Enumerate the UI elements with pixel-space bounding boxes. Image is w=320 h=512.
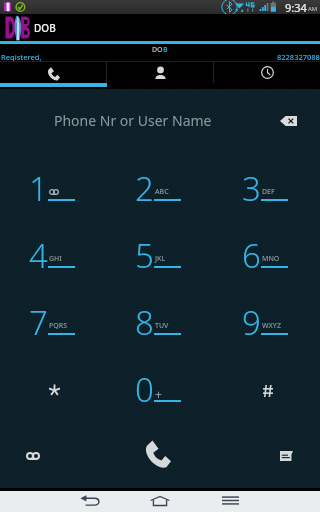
button[interactable]: Home — [140, 491, 180, 512]
button[interactable]: Recents — [210, 491, 250, 512]
button[interactable]: Backspace — [280, 116, 297, 126]
button[interactable] — [213, 357, 320, 424]
button[interactable]: 6 — [213, 223, 320, 290]
button[interactable]: 9 — [213, 290, 320, 357]
staticText: 4 — [29, 233, 48, 273]
staticText: TUV — [155, 321, 169, 331]
staticText: B — [163, 45, 168, 55]
staticText: GHI — [49, 254, 62, 264]
staticText: 9:34 — [285, 0, 307, 14]
staticText: 9 — [242, 300, 261, 340]
button[interactable]: Voicemail — [13, 436, 53, 476]
staticText: WXYZ — [262, 321, 281, 331]
button[interactable]: Recents tab — [214, 62, 320, 83]
staticText: ABC — [155, 187, 169, 197]
button[interactable] — [0, 357, 106, 424]
staticText: + — [155, 386, 162, 402]
button[interactable]: Hide keypad — [266, 436, 306, 476]
button[interactable]: 8 — [106, 290, 213, 357]
button[interactable]: 0 — [106, 357, 213, 424]
staticText: Registered, — [1, 52, 42, 62]
button[interactable]: 2 — [106, 156, 213, 223]
staticText: 8228327088 — [277, 52, 320, 62]
staticText: 3 — [242, 166, 261, 206]
staticText: JKL — [155, 254, 166, 264]
staticText: 6 — [242, 233, 261, 273]
staticText: 1 — [29, 166, 48, 206]
button[interactable]: 7 — [0, 290, 106, 357]
staticText: 5 — [135, 233, 154, 273]
button[interactable]: 5 — [106, 223, 213, 290]
staticText: DEF — [262, 187, 275, 197]
button[interactable]: Dial tab — [0, 62, 106, 83]
staticText: MNO — [262, 254, 280, 264]
button[interactable]: 1 — [0, 156, 106, 223]
staticText: DOB — [34, 21, 56, 35]
button[interactable]: Contacts tab — [107, 62, 213, 83]
button[interactable]: 4 — [0, 223, 106, 290]
staticText: DO — [152, 45, 163, 55]
staticText: PQRS — [49, 321, 68, 331]
staticText: 8 — [135, 300, 154, 340]
button[interactable]: 3 — [213, 156, 320, 223]
staticText: 0 — [135, 367, 154, 407]
button[interactable]: Back — [70, 491, 110, 512]
button[interactable]: Call — [137, 435, 183, 481]
staticText: AM — [308, 5, 318, 13]
staticText: Phone Nr or User Name — [54, 111, 212, 130]
staticText: 2 — [135, 166, 154, 206]
staticText: 7 — [29, 300, 48, 340]
